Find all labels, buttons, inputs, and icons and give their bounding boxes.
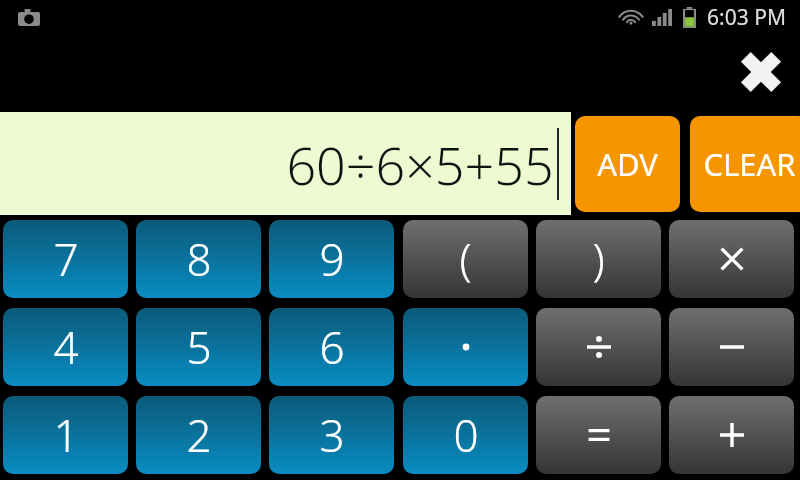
staticText: 9 bbox=[319, 229, 345, 289]
staticText: 8 bbox=[186, 229, 212, 289]
button[interactable]: ) bbox=[536, 220, 661, 298]
button[interactable]: Multiply bbox=[669, 220, 794, 298]
staticText: 60÷6×5+55 bbox=[286, 129, 554, 200]
button[interactable]: 60÷6×5+55 bbox=[0, 112, 571, 215]
staticText: 1 bbox=[53, 405, 79, 465]
button[interactable]: CLEAR bbox=[690, 116, 800, 212]
button[interactable]: Subtract bbox=[669, 308, 794, 386]
button[interactable]: 8 bbox=[136, 220, 261, 298]
button[interactable]: 0 bbox=[403, 396, 528, 474]
button[interactable]: ADV bbox=[575, 116, 680, 212]
staticText: 2 bbox=[186, 405, 212, 465]
button[interactable]: Equals bbox=[536, 396, 661, 474]
button[interactable]: Divide bbox=[536, 308, 661, 386]
staticText: 4 bbox=[53, 317, 79, 377]
staticText: 6:03 PM bbox=[707, 3, 786, 32]
button[interactable]: 9 bbox=[269, 220, 394, 298]
staticText: ( bbox=[459, 229, 472, 289]
button[interactable]: 7 bbox=[3, 220, 128, 298]
button[interactable]: 6 bbox=[269, 308, 394, 386]
button[interactable]: Close bbox=[733, 44, 789, 100]
staticText: ) bbox=[592, 229, 605, 289]
button[interactable]: 1 bbox=[3, 396, 128, 474]
staticText: 7 bbox=[53, 229, 79, 289]
staticText: 5 bbox=[186, 317, 212, 377]
button[interactable]: Add bbox=[669, 396, 794, 474]
button[interactable]: ( bbox=[403, 220, 528, 298]
staticText: ADV bbox=[597, 143, 658, 185]
button[interactable]: 5 bbox=[136, 308, 261, 386]
button[interactable]: Decimal point bbox=[403, 308, 528, 386]
staticText: 0 bbox=[453, 405, 479, 465]
staticText: 6 bbox=[319, 317, 345, 377]
button[interactable]: 3 bbox=[269, 396, 394, 474]
button[interactable]: 2 bbox=[136, 396, 261, 474]
staticText: CLEAR bbox=[703, 143, 796, 185]
staticText: 3 bbox=[319, 405, 345, 465]
button[interactable]: 4 bbox=[3, 308, 128, 386]
